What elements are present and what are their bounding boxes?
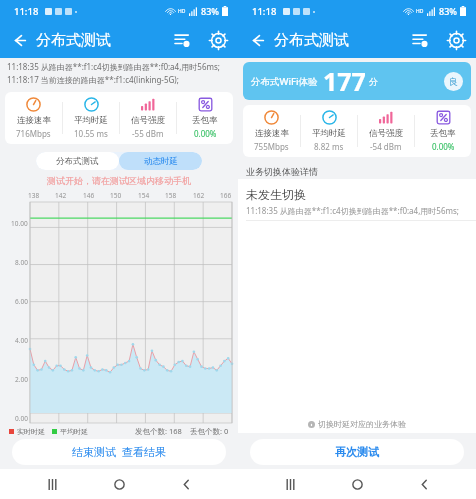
button[interactable]: History: [408, 28, 432, 52]
staticText: 154: [138, 191, 150, 200]
button[interactable]: 再次测试: [250, 439, 464, 465]
staticText: 结束测试: [72, 445, 116, 459]
staticText: 切换时延对应的业务体验: [318, 419, 406, 429]
button[interactable]: Home: [104, 469, 134, 499]
staticText: HD: [178, 8, 186, 15]
staticText: 良: [449, 76, 458, 87]
staticText: 未发生切换: [246, 187, 306, 202]
button[interactable]: 动态时延: [119, 152, 202, 170]
staticText: 10.00: [11, 219, 28, 228]
staticText: 11:18:17 当前连接的路由器**:f1:c4(linking-5G);: [7, 74, 179, 85]
staticText: 分布式WiFi体验: [251, 75, 318, 88]
staticText: 142: [55, 191, 67, 200]
button[interactable]: 连接速率: [5, 92, 62, 144]
staticText: 755Mbps: [254, 141, 289, 152]
staticText: 分布式测试: [56, 156, 99, 167]
staticText: 丢包率: [192, 115, 218, 126]
staticText: 再次测试: [335, 445, 379, 459]
button[interactable]: Settings: [444, 28, 468, 52]
button[interactable]: Back: [171, 469, 201, 499]
staticText: 实时时延: [17, 427, 45, 436]
staticText: 10.55 ms: [74, 128, 108, 139]
staticText: 150: [110, 191, 122, 200]
button[interactable]: Back: [244, 27, 270, 53]
staticText: 11:18:35 从路由器**:f1:c4切换到路由器**:f0:a4,用时56…: [7, 61, 220, 72]
staticText: 11:18:35 从路由器**:f1:c4切换到路由器**:f0:a4,用时56…: [246, 205, 459, 216]
staticText: 动态时延: [144, 156, 178, 167]
staticText: 6.00: [15, 297, 28, 306]
button[interactable]: 丢包率: [177, 92, 233, 144]
staticText: 716Mbps: [16, 128, 51, 139]
button[interactable]: 平均时延: [301, 105, 357, 157]
staticText: 丢包率: [430, 128, 456, 139]
staticText: 分布式测试: [274, 31, 349, 50]
staticText: 平均时延: [60, 427, 88, 436]
staticText: 158: [165, 191, 177, 200]
staticText: 0.00: [15, 414, 28, 423]
staticText: -54 dBm: [370, 141, 402, 152]
staticText: 信号强度: [131, 115, 165, 126]
staticText: 分: [369, 76, 378, 87]
button[interactable]: 信号强度: [120, 92, 176, 144]
staticText: 连接速率: [17, 115, 51, 126]
staticText: 分布式测试: [36, 31, 111, 50]
staticText: 信号强度: [369, 128, 403, 139]
staticText: 平均时延: [312, 128, 346, 139]
button[interactable]: Home: [342, 469, 372, 499]
button[interactable]: Back: [409, 469, 439, 499]
staticText: -55 dBm: [132, 128, 164, 139]
staticText: 8.82 ms: [314, 141, 344, 152]
staticText: 丢包个数: 0: [190, 426, 229, 436]
staticText: 8.00: [15, 258, 28, 267]
staticText: 发包个数: 168: [135, 426, 182, 436]
staticText: 测试开始，请在测试区域内移动手机: [0, 175, 238, 186]
button[interactable]: 结束测试: [12, 439, 226, 465]
staticText: 查看结果: [122, 445, 166, 459]
staticText: 162: [193, 191, 205, 200]
staticText: 业务切换体验详情: [246, 166, 318, 177]
staticText: 连接速率: [255, 128, 289, 139]
button[interactable]: 丢包率: [415, 105, 471, 157]
button[interactable]: History: [170, 28, 194, 52]
staticText: 11:18: [14, 5, 39, 18]
staticText: 138: [28, 191, 40, 200]
button[interactable]: 信号强度: [358, 105, 414, 157]
button[interactable]: Back: [6, 27, 32, 53]
staticText: HD: [416, 8, 424, 15]
staticText: 166: [220, 191, 232, 200]
staticText: 146: [83, 191, 95, 200]
staticText: 177: [323, 64, 366, 98]
button[interactable]: Settings: [206, 28, 230, 52]
button[interactable]: Recents: [275, 469, 305, 499]
staticText: 4.00: [15, 336, 28, 345]
button[interactable]: Recents: [37, 469, 67, 499]
staticText: 平均时延: [74, 115, 108, 126]
staticText: 0.00%: [432, 141, 455, 152]
staticText: 83%: [439, 5, 457, 17]
button[interactable]: 分布式WiFi体验: [243, 62, 471, 100]
button[interactable]: 分布式测试: [36, 152, 119, 170]
button[interactable]: 平均时延: [63, 92, 119, 144]
staticText: 2.00: [15, 375, 28, 384]
staticText: 0.00%: [194, 128, 217, 139]
staticText: 11:18: [252, 5, 277, 18]
staticText: 83%: [201, 5, 219, 17]
button[interactable]: 连接速率: [243, 105, 300, 157]
